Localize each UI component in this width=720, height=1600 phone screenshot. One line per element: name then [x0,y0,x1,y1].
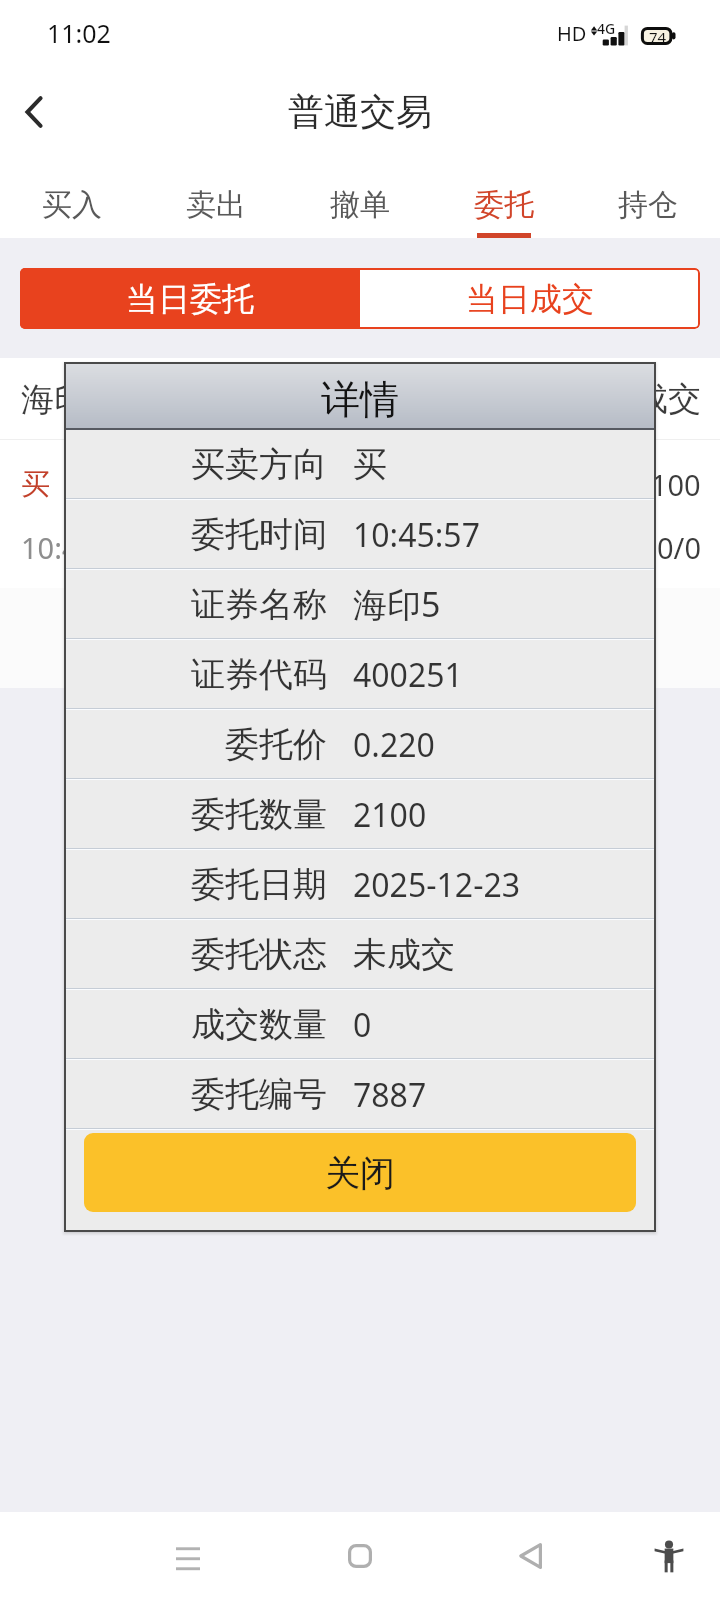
staticText: 74 [649,27,667,47]
button[interactable]: 撤单 [288,162,432,238]
button[interactable]: 海印5 [0,358,720,588]
staticText: 0 [353,1003,372,1047]
staticText: HD [557,20,587,47]
staticText: 海印5 [353,581,441,627]
staticText: 详情 [321,375,399,424]
staticText: 0/0 [657,528,701,567]
staticText: 当日委托 [126,279,254,319]
staticText: 普通交易 [288,89,432,134]
staticText: 未成交 [602,378,701,420]
button[interactable]: 持仓 [576,162,720,238]
staticText: 4G [597,19,616,38]
staticText: 10:45:57 [353,513,480,557]
staticText: 撤单 [330,186,390,224]
staticText: 委托价 [225,723,327,766]
staticText: 委托数量 [191,793,327,836]
button[interactable]: Back [490,1516,570,1596]
staticText: 持仓 [618,186,678,224]
staticText: 证券代码 [191,653,327,696]
button[interactable]: 卖出 [144,162,288,238]
staticText: 关闭 [325,1151,395,1195]
button[interactable]: 买入 [0,162,144,238]
button[interactable]: Back [3,81,65,143]
button[interactable]: Recent apps [148,1518,228,1598]
staticText: 委托日期 [191,863,327,906]
staticText: 买入 [42,186,102,224]
button[interactable]: Home [320,1516,400,1596]
staticText: 买 [353,443,387,486]
staticText: 买 [21,466,50,503]
staticText: 11:02 [47,16,111,50]
button[interactable]: 当日成交 [360,268,700,329]
staticText: 卖出 [186,186,246,224]
staticText: 委托编号 [191,1073,327,1116]
staticText: 2025-12-23 [353,863,521,907]
staticText: 400251 [353,653,463,697]
staticText: 海印5 [21,376,106,421]
staticText: 7887 [353,1073,427,1117]
staticText: 未成交 [353,933,455,976]
staticText: 委托时间 [191,513,327,556]
staticText: 10:45:57 [21,528,137,567]
staticText: 成交数量 [191,1003,327,1046]
staticText: 当日成交 [466,279,594,319]
button[interactable]: 委托 [432,162,576,238]
staticText: 0.220 [353,723,435,767]
button[interactable]: 关闭 [84,1133,636,1212]
staticText: 2100 [353,793,427,837]
staticText: 买卖方向 [191,443,327,486]
button[interactable]: Accessibility [629,1516,709,1596]
staticText: 委托状态 [191,933,327,976]
staticText: 0.220 2100 [530,465,701,504]
staticText: 委托 [474,186,534,224]
button[interactable]: 当日委托 [20,268,360,329]
staticText: 证券名称 [191,583,327,626]
